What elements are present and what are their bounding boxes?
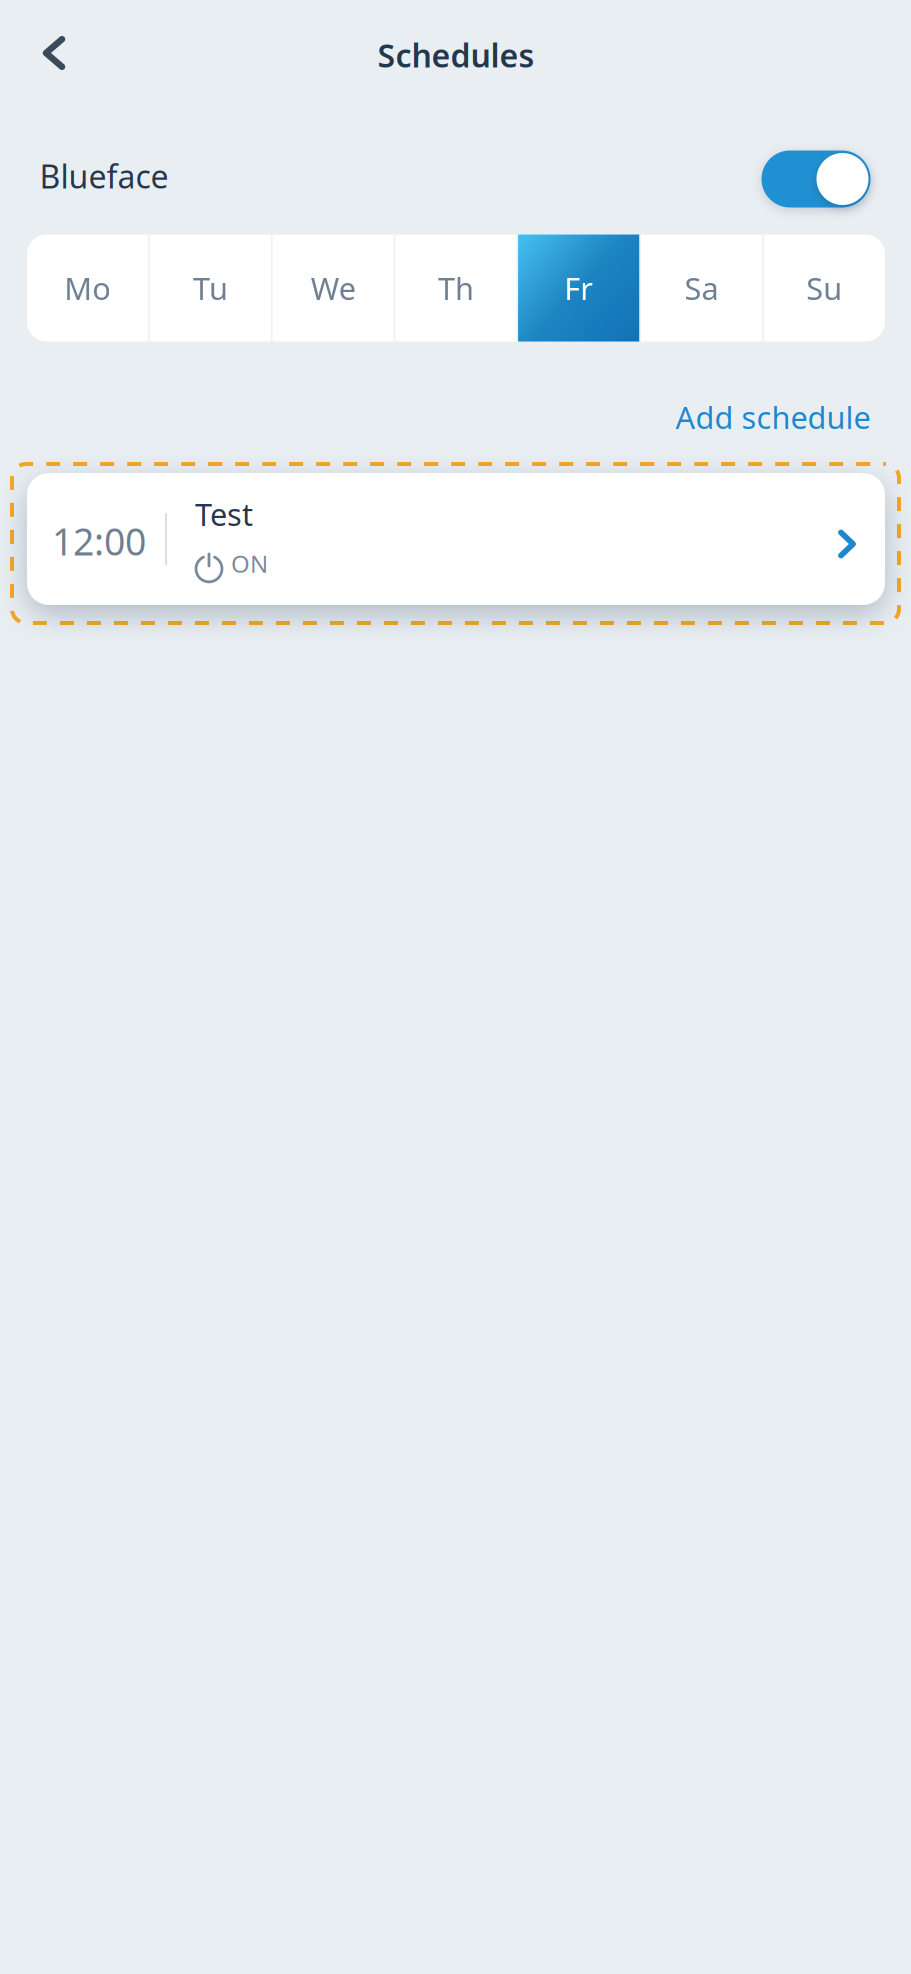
button[interactable]: Mo [27, 234, 148, 341]
button[interactable]: 12:00 [27, 473, 885, 605]
staticText: Fr [564, 268, 593, 308]
button[interactable]: Fr [518, 234, 639, 341]
button[interactable]: Sa [641, 234, 762, 341]
button[interactable]: Back [24, 18, 84, 88]
staticText: Th [438, 268, 474, 308]
staticText: Blueface [39, 155, 168, 197]
staticText: 12:00 [52, 516, 146, 566]
staticText: Mo [64, 268, 111, 308]
staticText: Test [195, 494, 253, 534]
button[interactable]: We [272, 234, 394, 341]
staticText: We [311, 268, 356, 308]
button[interactable]: Th [395, 234, 517, 341]
button[interactable]: Blueface on [761, 150, 870, 207]
staticText: Sa [684, 268, 718, 308]
staticText: Su [806, 268, 842, 308]
button[interactable]: Tu [150, 234, 271, 341]
staticText: Tu [193, 268, 228, 308]
button[interactable]: Add schedule [669, 387, 876, 447]
staticText: Add schedule [675, 397, 870, 437]
staticText: Schedules [377, 34, 534, 76]
staticText: ON [231, 547, 268, 579]
button[interactable]: Su [764, 234, 885, 341]
